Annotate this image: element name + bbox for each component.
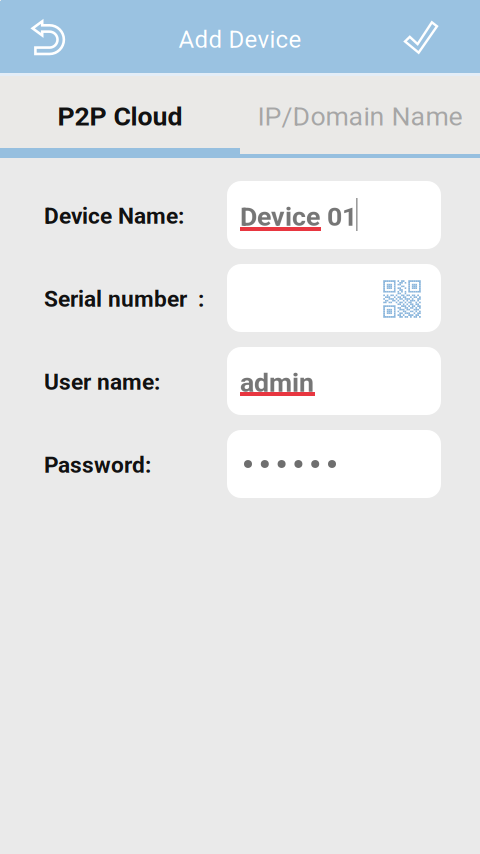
staticText: Serial number : (44, 286, 204, 312)
staticText: Device Name: (44, 203, 184, 229)
staticText: User name: (44, 369, 160, 395)
staticText: IP/Domain Name (257, 101, 462, 132)
staticText: Add Device (178, 25, 301, 53)
button[interactable]: IP/Domain Name (240, 73, 480, 154)
staticText: admin (240, 367, 314, 398)
button[interactable]: Back (0, 0, 96, 73)
staticText: Device 01 (240, 201, 357, 232)
staticText: Password: (44, 452, 151, 478)
staticText: P2P Cloud (57, 101, 182, 132)
button[interactable]: P2P Cloud (0, 73, 240, 154)
button[interactable]: Device 01 (227, 181, 441, 249)
button[interactable]: admin (227, 347, 441, 415)
button[interactable] (227, 264, 441, 332)
button[interactable]: Confirm (384, 0, 480, 73)
button[interactable] (227, 430, 441, 498)
